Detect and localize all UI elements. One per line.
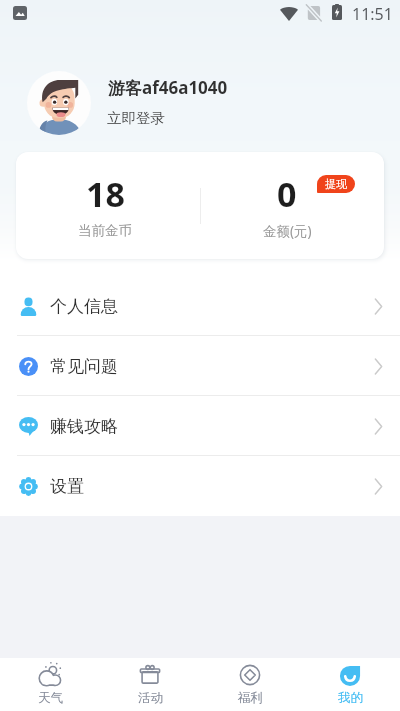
button[interactable]: 天气 <box>0 658 100 711</box>
staticText: 18 <box>86 171 125 217</box>
staticText: 天气 <box>38 690 63 706</box>
staticText: 福利 <box>238 690 263 706</box>
staticText: 设置 <box>50 476 84 497</box>
button[interactable]: 设置 <box>0 456 400 516</box>
button[interactable]: 常见问题 <box>0 336 400 396</box>
staticText: 活动 <box>138 690 163 706</box>
button[interactable]: 提现 <box>317 175 355 193</box>
staticText: 11:51 <box>352 3 393 25</box>
staticText: 立即登录 <box>107 109 165 127</box>
staticText: 0 <box>277 171 297 217</box>
staticText: 我的 <box>338 690 363 706</box>
staticText: 当前金币 <box>78 222 132 239</box>
staticText: 提现 <box>325 177 347 191</box>
staticText: 赚钱攻略 <box>50 416 118 437</box>
button[interactable]: 个人信息 <box>0 276 400 336</box>
staticText: 常见问题 <box>50 356 118 377</box>
button[interactable]: 赚钱攻略 <box>0 396 400 456</box>
staticText: 游客af46a1040 <box>108 76 228 99</box>
button[interactable]: 我的 <box>300 658 400 711</box>
staticText: 金额(元) <box>263 222 312 240</box>
button[interactable]: 福利 <box>200 658 300 711</box>
staticText: 个人信息 <box>50 296 118 317</box>
button[interactable]: 活动 <box>100 658 200 711</box>
